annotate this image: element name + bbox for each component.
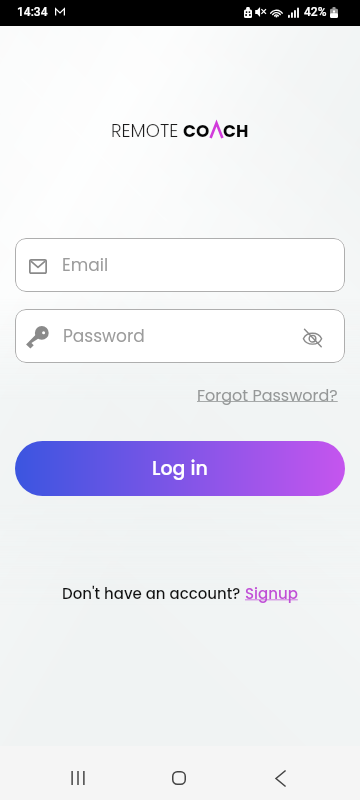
- staticText: Email: [62, 253, 109, 277]
- staticText: Forgot Password?: [197, 384, 338, 406]
- staticText: Password: [63, 324, 145, 348]
- staticText: 42%: [304, 5, 327, 19]
- staticText: Signup: [245, 583, 298, 604]
- staticText: Don't have an account?: [62, 583, 245, 604]
- staticText: 14:34: [17, 5, 48, 19]
- button[interactable]: Email: [15, 238, 345, 292]
- staticText: REMOTE: [111, 118, 179, 143]
- button[interactable]: Signup: [245, 583, 298, 604]
- staticText: CO: [183, 119, 210, 143]
- button[interactable]: Recent apps: [64, 764, 92, 792]
- button[interactable]: Log in: [15, 441, 345, 496]
- button[interactable]: Back: [266, 764, 294, 792]
- staticText: CH: [223, 119, 249, 143]
- button[interactable]: Forgot Password?: [197, 384, 338, 406]
- button[interactable]: Show password: [297, 323, 327, 353]
- button[interactable]: Home: [165, 764, 193, 792]
- button[interactable]: Password: [15, 309, 345, 363]
- staticText: Log in: [152, 455, 208, 482]
